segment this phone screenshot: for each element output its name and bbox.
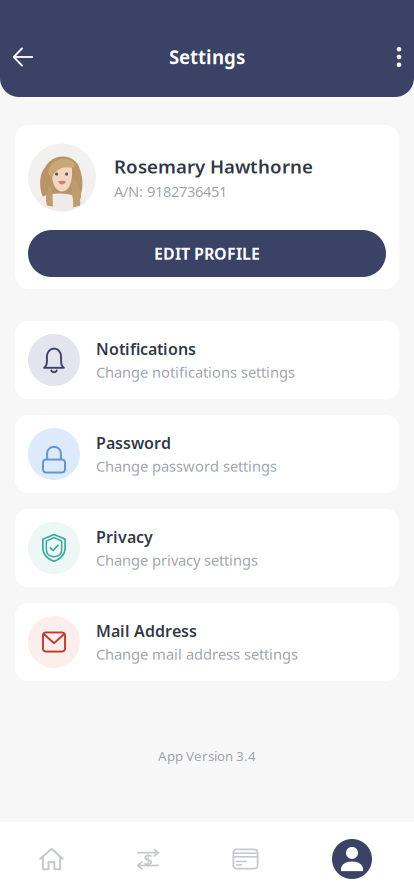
button[interactable]: More options	[376, 34, 414, 80]
button[interactable]: Password	[15, 415, 399, 493]
button[interactable]: Transfers	[124, 822, 172, 896]
button[interactable]: Notifications	[15, 321, 399, 399]
staticText: Rosemary Hawthorne	[114, 154, 313, 179]
button[interactable]: Profile	[328, 822, 376, 896]
staticText: Notifications	[96, 338, 196, 359]
staticText: Change mail address settings	[96, 644, 298, 664]
staticText: Settings	[169, 45, 245, 69]
button[interactable]: Mail Address	[15, 603, 399, 681]
button[interactable]: Privacy	[15, 509, 399, 587]
staticText: Change privacy settings	[96, 550, 258, 570]
staticText: Change password settings	[96, 456, 277, 476]
button[interactable]: EDIT PROFILE	[28, 230, 386, 277]
staticText: App Version 3.4	[158, 747, 256, 765]
staticText: $	[143, 849, 152, 870]
button[interactable]: Home	[27, 822, 75, 896]
staticText: A/N: 9182736451	[114, 182, 227, 201]
button[interactable]: Cards	[221, 822, 269, 896]
staticText: EDIT PROFILE	[154, 243, 260, 264]
staticText: Privacy	[96, 526, 153, 547]
staticText: Change notifications settings	[96, 362, 295, 382]
staticText: Password	[96, 432, 171, 453]
button[interactable]: Back	[0, 34, 46, 80]
staticText: Mail Address	[96, 620, 197, 641]
